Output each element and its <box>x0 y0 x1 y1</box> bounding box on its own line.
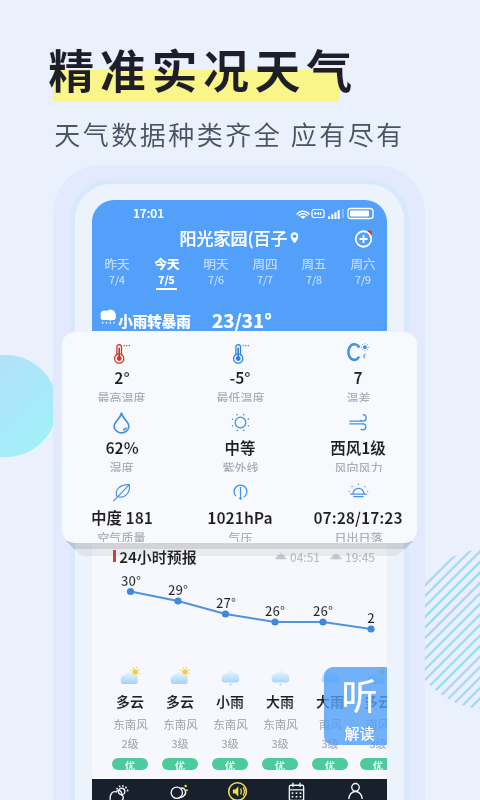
staticText: 优 <box>373 758 383 770</box>
staticText: 气压 <box>228 529 253 542</box>
button[interactable]: 1021hPa <box>181 472 299 542</box>
staticText: 1021hPa <box>207 506 273 528</box>
button[interactable]: Voice <box>210 779 269 800</box>
staticText: 17:01 <box>133 204 164 221</box>
staticText: 明天 <box>203 254 229 272</box>
button[interactable]: 7 <box>299 332 417 402</box>
button[interactable]: 周五 <box>289 254 338 290</box>
staticText: 昨天 <box>104 254 130 272</box>
button[interactable]: Calendar <box>269 779 328 800</box>
staticText: 湿度 <box>109 459 134 472</box>
staticText: 7/8 <box>306 272 322 287</box>
staticText: 62% <box>105 436 139 458</box>
staticText: 紫外线 <box>222 459 259 472</box>
button[interactable]: 中等 <box>181 402 299 472</box>
staticText: 最高温度 <box>97 389 146 402</box>
button[interactable]: 多云 <box>355 665 387 770</box>
button[interactable]: 小雨 <box>205 665 255 770</box>
button[interactable]: 2° <box>62 332 181 402</box>
staticText: 南风 <box>319 716 342 733</box>
staticText: 29° <box>168 580 188 599</box>
staticText: 优 <box>275 758 285 770</box>
staticText: 西风1级 <box>330 436 386 458</box>
button[interactable]: 大雨 <box>255 665 305 770</box>
staticText: 3级 <box>221 735 239 751</box>
staticText: 2级 <box>121 735 139 751</box>
staticText: 19:45 <box>345 548 375 565</box>
staticText: 优 <box>225 758 235 770</box>
button[interactable]: Weather <box>92 779 151 800</box>
staticText: 周五 <box>301 254 327 272</box>
staticText: 东南风 <box>163 716 198 733</box>
button[interactable]: 15 day forecast <box>151 779 210 800</box>
staticText: 大雨 <box>316 691 344 711</box>
button[interactable]: -5° <box>181 332 299 402</box>
staticText: 7/5 <box>158 272 175 287</box>
staticText: 优 <box>325 758 335 770</box>
staticText: 精准实况天气 <box>48 35 358 102</box>
staticText: 阳光家园(百子 <box>179 225 288 250</box>
staticText: 小雨转暴雨 <box>118 310 191 331</box>
button[interactable]: 多云 <box>155 665 205 770</box>
staticText: 听 <box>341 668 378 720</box>
staticText: 30° <box>121 571 141 590</box>
staticText: 26° <box>313 601 333 620</box>
staticText: 日出日落 <box>334 529 383 542</box>
staticText: 3级 <box>369 735 387 751</box>
staticText: 最低温度 <box>216 389 265 402</box>
staticText: 23/31° <box>212 306 272 334</box>
staticText: 空气质量 <box>97 529 146 542</box>
staticText: 中度 181 <box>91 506 153 528</box>
staticText: 7 <box>353 366 363 388</box>
button[interactable]: 阳光家园(百子 <box>179 225 301 250</box>
staticText: 解读 <box>344 722 375 744</box>
staticText: 南风 <box>366 716 387 733</box>
staticText: 多云 <box>116 691 144 711</box>
staticText: 东南风 <box>213 716 248 733</box>
staticText: 东南风 <box>263 716 298 733</box>
staticText: 中等 <box>224 436 256 458</box>
button[interactable]: Add city <box>351 226 376 251</box>
staticText: 7/7 <box>257 272 273 287</box>
staticText: 3级 <box>271 735 289 751</box>
staticText: 2 <box>367 608 375 627</box>
staticText: 天气数据种类齐全 应有尽有 <box>54 115 405 153</box>
button[interactable]: 明天 <box>191 254 240 290</box>
button[interactable]: 中度 181 <box>62 472 181 542</box>
button[interactable]: 07:28/17:23 <box>299 472 417 542</box>
button[interactable]: 听 <box>324 667 387 745</box>
staticText: 07:28/17:23 <box>313 506 403 528</box>
staticText: 3级 <box>171 735 189 751</box>
button[interactable]: 周六 <box>338 254 387 290</box>
staticText: 优 <box>125 758 135 770</box>
staticText: 风向风力 <box>334 459 383 472</box>
staticText: 24小时预报 <box>119 546 197 566</box>
staticText: 多云 <box>364 691 387 711</box>
button[interactable]: Profile <box>328 779 387 800</box>
staticText: 小雨 <box>216 691 244 711</box>
staticText: 优 <box>175 758 185 770</box>
staticText: 今天 <box>154 254 180 272</box>
staticText: 7/6 <box>208 272 224 287</box>
staticText: 周六 <box>350 254 376 272</box>
button[interactable]: 今天 <box>142 254 191 290</box>
button[interactable]: 大雨 <box>305 665 355 770</box>
staticText: 27° <box>216 593 236 612</box>
staticText: 2° <box>114 366 130 388</box>
button[interactable]: 西风1级 <box>299 402 417 472</box>
staticText: 周四 <box>252 254 278 272</box>
staticText: 7/9 <box>355 272 371 287</box>
button[interactable]: 周四 <box>240 254 289 290</box>
staticText: 温差 <box>346 389 371 402</box>
staticText: 7/4 <box>109 272 125 287</box>
staticText: 大雨 <box>266 691 294 711</box>
staticText: 3级 <box>321 735 339 751</box>
button[interactable]: 62% <box>62 402 181 472</box>
button[interactable]: 昨天 <box>92 254 142 290</box>
staticText: 04:51 <box>290 548 320 565</box>
staticText: 东南风 <box>113 716 148 733</box>
staticText: 多云 <box>166 691 194 711</box>
staticText: 26° <box>265 601 285 620</box>
button[interactable]: 多云 <box>105 665 155 770</box>
staticText: -5° <box>229 366 251 388</box>
